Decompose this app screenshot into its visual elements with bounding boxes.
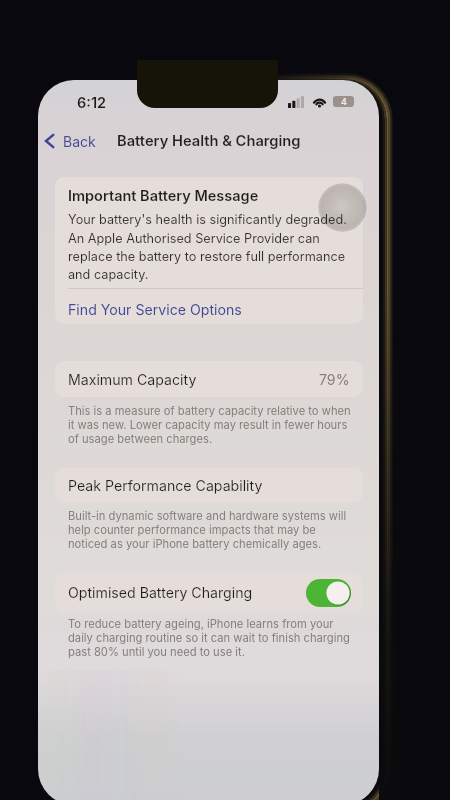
button[interactable]: Find Your Service Options (55, 292, 363, 327)
staticText: This is a measure of battery capacity re… (68, 404, 351, 446)
staticText: Your battery's health is significantly d… (68, 212, 347, 282)
button[interactable]: Optimised Battery Charging toggle (306, 579, 351, 607)
other: Battery 4 percent (333, 96, 354, 107)
staticText: Find Your Service Options (68, 301, 242, 318)
button[interactable]: Back (42, 126, 87, 156)
button[interactable]: Maximum Capacity (55, 361, 363, 397)
staticText: 4 (341, 96, 347, 107)
staticText: Built-in dynamic software and hardware s… (68, 509, 347, 551)
staticText: Peak Performance Capability (68, 477, 263, 494)
staticText: Optimised Battery Charging (68, 584, 253, 601)
staticText: Maximum Capacity (68, 371, 197, 388)
staticText: Back (63, 133, 96, 150)
staticText: Battery Health & Charging (117, 132, 301, 150)
staticText: Important Battery Message (68, 187, 259, 205)
staticText: To reduce battery ageing, iPhone learns … (68, 617, 350, 659)
staticText: 6:12 (77, 94, 107, 112)
button[interactable]: Peak Performance Capability (55, 468, 363, 503)
staticText: 79% (319, 371, 350, 388)
